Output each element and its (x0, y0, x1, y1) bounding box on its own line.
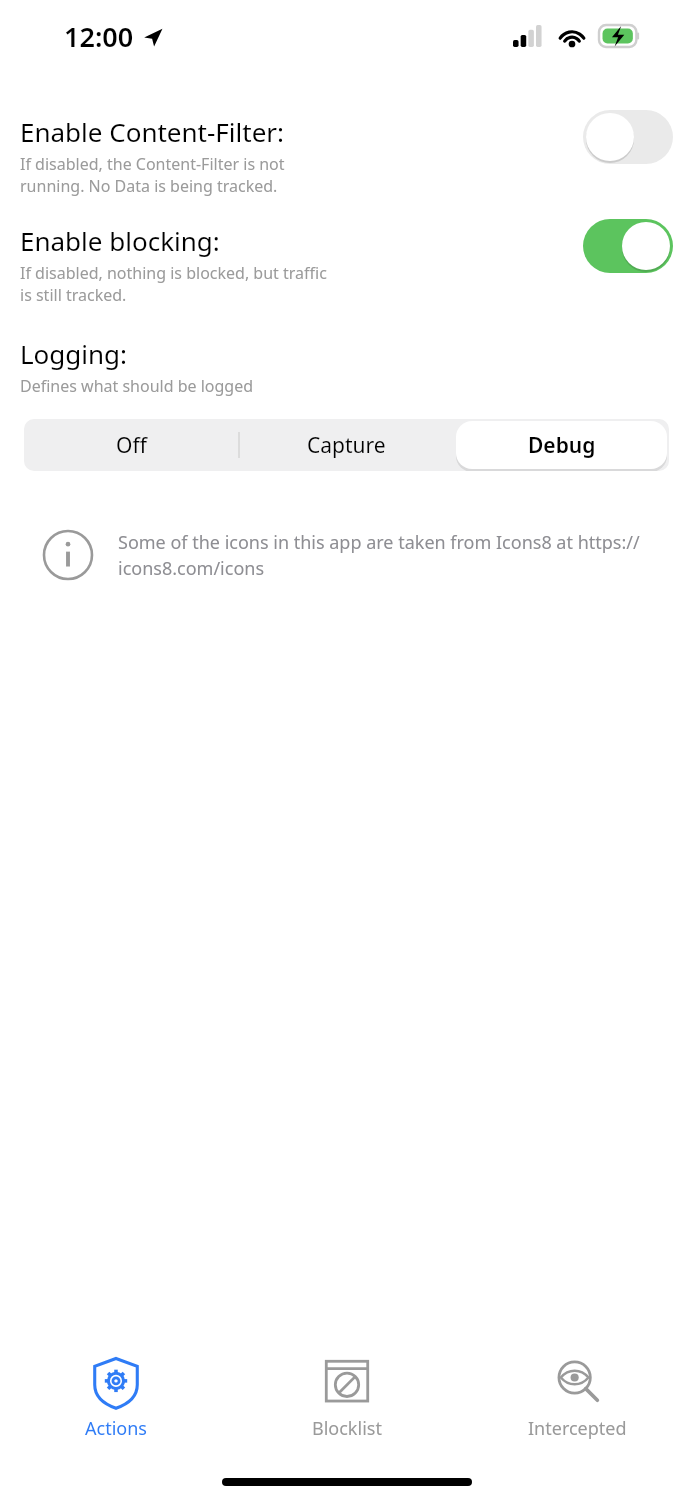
button[interactable]: Enable blocking: (0, 223, 693, 306)
button[interactable]: Capture (239, 419, 454, 471)
staticText: Enable Content-Filter: (20, 114, 285, 149)
staticText: 12:00 (64, 18, 134, 55)
button[interactable]: Intercepted (462, 1342, 693, 1452)
staticText: If disabled, the Content-Filter is not r… (20, 153, 285, 197)
button[interactable]: Toggle on (583, 219, 673, 273)
staticText: Capture (307, 431, 386, 460)
button[interactable]: Debug (454, 419, 669, 471)
staticText: Logging: (20, 336, 128, 371)
button[interactable]: Actions (0, 1342, 231, 1452)
staticText: Off (116, 431, 147, 460)
button[interactable]: Enable Content-Filter: (0, 114, 693, 197)
staticText: Intercepted (528, 1416, 627, 1441)
staticText: Defines what should be logged (20, 375, 254, 397)
staticText: Blocklist (312, 1416, 382, 1441)
staticText: Some of the icons in this app are taken … (118, 530, 653, 581)
staticText: If disabled, nothing is blocked, but tra… (20, 262, 327, 306)
button[interactable]: Blocklist (231, 1342, 462, 1452)
staticText: Debug (528, 431, 596, 460)
button[interactable]: Toggle off (583, 110, 673, 164)
button[interactable]: Off (24, 419, 239, 471)
staticText: Enable blocking: (20, 223, 220, 258)
staticText: Actions (85, 1416, 147, 1441)
